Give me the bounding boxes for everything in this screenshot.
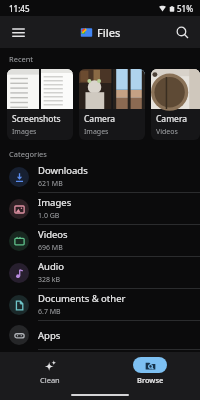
staticText: Videos <box>156 127 178 137</box>
staticText: Files <box>97 25 121 40</box>
staticText: Recent <box>9 54 34 64</box>
button[interactable]: Apps <box>0 321 200 350</box>
staticText: Images <box>38 196 72 209</box>
button[interactable]: Search <box>168 18 196 46</box>
staticText: Camera <box>156 113 187 125</box>
staticText: Downloads <box>38 164 88 177</box>
button[interactable]: Open navigation menu <box>4 18 32 46</box>
staticText: Documents & other <box>38 292 126 305</box>
button[interactable]: Images <box>0 193 200 225</box>
staticText: Screenshots <box>12 113 61 125</box>
button[interactable]: Downloads <box>0 161 200 193</box>
staticText: Images <box>12 127 37 137</box>
staticText: Browse <box>137 375 164 385</box>
staticText: 1.0 GB <box>38 211 60 221</box>
staticText: 51% <box>177 3 193 14</box>
button[interactable]: Documents & other <box>0 289 200 321</box>
staticText: Audio <box>38 260 64 273</box>
staticText: Camera <box>84 113 115 125</box>
staticText: Clean <box>40 375 60 385</box>
button[interactable]: Audio <box>0 257 200 289</box>
staticText: 696 MB <box>38 243 63 253</box>
staticText: 6.7 MB <box>38 307 61 317</box>
staticText: Categories <box>9 149 47 159</box>
staticText: Apps <box>38 329 61 342</box>
staticText: Images <box>84 127 109 137</box>
button[interactable]: Clean <box>0 352 100 389</box>
button[interactable]: Videos <box>0 225 200 257</box>
staticText: 621 MB <box>38 179 63 189</box>
staticText: 11:45 <box>9 3 30 14</box>
button[interactable]: Browse <box>100 352 200 389</box>
staticText: 328 kB <box>38 275 61 285</box>
button[interactable]: Camera <box>79 69 145 140</box>
button[interactable]: Camera <box>151 69 200 140</box>
button[interactable]: Screenshots <box>7 69 73 140</box>
staticText: Videos <box>38 228 68 241</box>
